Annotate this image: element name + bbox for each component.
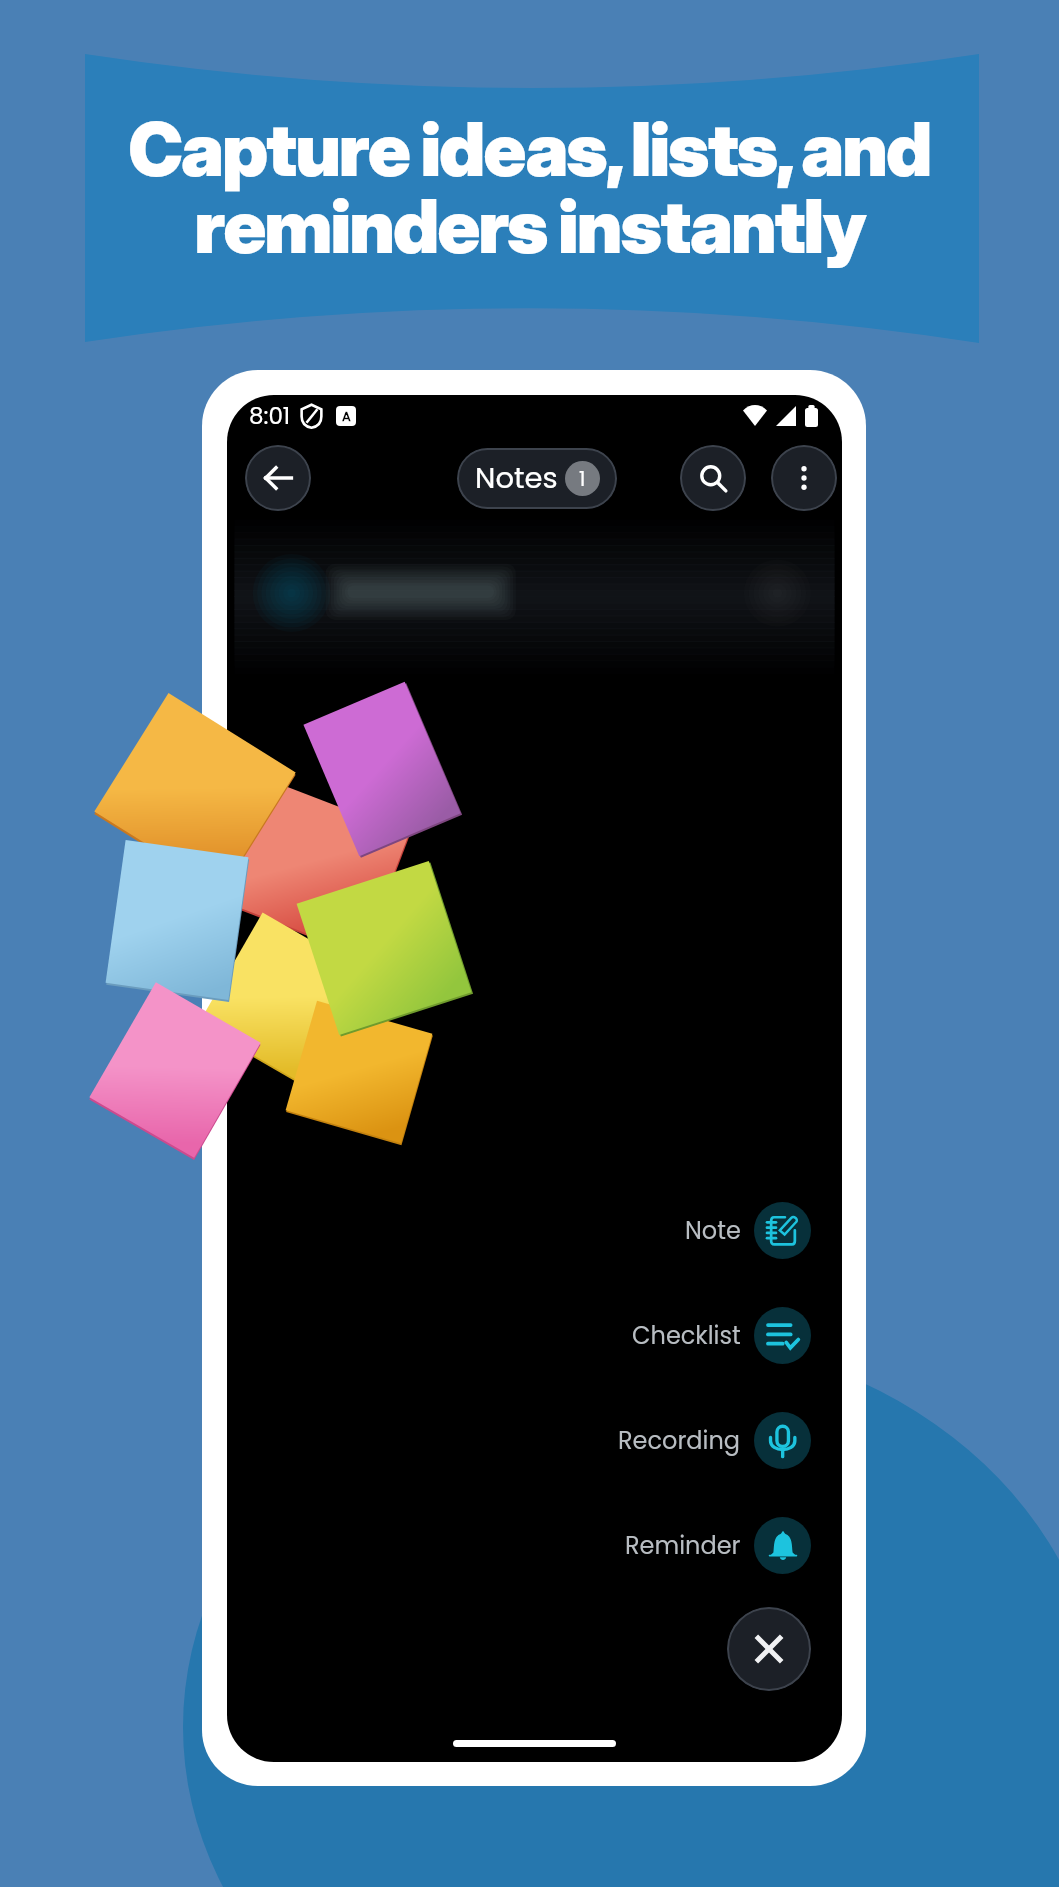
button[interactable]: More options xyxy=(771,445,837,511)
button[interactable]: Notes xyxy=(457,448,617,509)
button[interactable]: Note xyxy=(685,1202,811,1259)
staticText: A xyxy=(342,407,351,425)
staticText: Checklist xyxy=(632,1319,741,1353)
button[interactable]: Search xyxy=(680,445,746,511)
button[interactable]: Checklist xyxy=(632,1307,811,1364)
button[interactable]: Reminder xyxy=(625,1517,811,1574)
staticText: Capture ideas, lists, and reminders inst… xyxy=(0,104,1059,271)
staticText: Note xyxy=(685,1214,741,1248)
button[interactable]: Close menu xyxy=(727,1607,811,1691)
staticText: 8:01 xyxy=(249,400,291,432)
button[interactable]: Back xyxy=(245,445,311,511)
staticText: Notes xyxy=(475,458,558,499)
staticText: 1 xyxy=(579,465,586,493)
staticText: Recording xyxy=(618,1424,741,1458)
staticText: Reminder xyxy=(625,1529,741,1563)
button[interactable]: Recording xyxy=(618,1412,811,1469)
